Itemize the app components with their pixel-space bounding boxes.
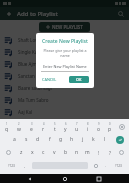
staticText: 4 (43, 122, 45, 126)
button[interactable]: ! (93, 146, 104, 159)
staticText: Ma Tum Sabro (18, 97, 49, 103)
button[interactable]: f (44, 133, 55, 146)
button[interactable]: m (82, 146, 93, 159)
staticText: t (54, 126, 56, 133)
button[interactable]: j (77, 133, 88, 146)
staticText: 8 (87, 122, 89, 126)
staticText: g (59, 136, 63, 143)
button[interactable]: Enter New Playlist Name (41, 62, 89, 71)
button[interactable]: Blue Ajmer Tra (0, 58, 129, 70)
button[interactable]: Enter (112, 133, 128, 146)
button[interactable]: Sanctan (0, 70, 129, 82)
button[interactable]: x (27, 146, 38, 159)
button[interactable]: NEW PLAYLIST (39, 22, 90, 32)
staticText: OK (76, 77, 82, 82)
staticText: r (42, 126, 45, 133)
staticText: . (105, 163, 107, 168)
button[interactable]: Back (25, 174, 35, 183)
button[interactable]: 7 (71, 121, 82, 133)
staticText: Blue Ajmer Tra (18, 61, 49, 67)
button[interactable]: Add (4, 9, 13, 18)
staticText: 7 (76, 122, 78, 126)
staticText: j (82, 136, 84, 143)
button[interactable]: Aaj Kal (0, 106, 129, 118)
staticText: y (64, 126, 67, 133)
staticText: ?123 (115, 164, 122, 168)
staticText: p (108, 126, 112, 133)
staticText: n (75, 149, 79, 156)
staticText: 2 (18, 122, 20, 126)
staticText: Baare saturnagi (18, 85, 52, 91)
staticText: NEW PLAYLIST (52, 24, 83, 30)
button[interactable]: Single Kaur (0, 46, 129, 58)
staticText: 0 (109, 122, 111, 126)
staticText: m (85, 149, 90, 156)
button[interactable]: 5 (49, 121, 60, 133)
button[interactable]: 2 (13, 121, 25, 133)
button[interactable]: ?123 (110, 159, 127, 172)
staticText: Add to Playlist (17, 10, 58, 18)
button[interactable]: Shift (1, 146, 15, 159)
staticText: Enter New Playlist Name (43, 64, 87, 69)
staticText: o (97, 126, 101, 133)
button[interactable]: k (88, 133, 99, 146)
staticText: 3 (31, 122, 33, 126)
button[interactable]: Backspace (115, 121, 128, 133)
button[interactable]: CANCEL (41, 76, 58, 83)
staticText: b (64, 149, 68, 156)
button[interactable]: 9 (93, 121, 104, 133)
button[interactable]: n (71, 146, 82, 159)
button[interactable]: 3 (25, 121, 37, 133)
staticText: ?123 (8, 164, 15, 168)
staticText: i (87, 126, 89, 133)
button[interactable]: d (32, 133, 44, 146)
staticText: 5 (54, 122, 56, 126)
button[interactable]: g (55, 133, 66, 146)
button[interactable]: 1 (1, 121, 13, 133)
button[interactable]: z (15, 146, 27, 159)
staticText: l (104, 136, 106, 143)
button[interactable]: 4 (37, 121, 49, 133)
staticText: ! (98, 150, 100, 156)
button[interactable]: Recents (94, 174, 104, 183)
button[interactable]: , (20, 159, 30, 172)
staticText: CANCEL (42, 77, 57, 82)
button[interactable]: s (20, 133, 32, 146)
button[interactable]: ?123 (2, 159, 20, 172)
button[interactable]: v (49, 146, 60, 159)
button[interactable]: ? (104, 146, 115, 159)
button[interactable]: 6 (60, 121, 71, 133)
button[interactable]: Home (60, 174, 70, 183)
staticText: 1 (6, 122, 8, 126)
staticText: v (53, 149, 56, 156)
staticText: k (92, 136, 95, 143)
staticText: Shaft Love (18, 37, 40, 43)
staticText: Sanctan (18, 73, 35, 79)
button[interactable]: Shift (115, 146, 128, 159)
staticText: w (17, 126, 21, 133)
button[interactable]: OK (69, 76, 89, 83)
button[interactable]: h (66, 133, 77, 146)
staticText: q (5, 126, 9, 133)
button[interactable]: Emoji (90, 159, 101, 172)
staticText: Create New Playlist (41, 38, 89, 45)
staticText: f (49, 136, 51, 143)
button[interactable]: 0 (104, 121, 115, 133)
button[interactable]: b (60, 146, 71, 159)
button[interactable]: Search (116, 9, 125, 18)
button[interactable]: a (8, 133, 20, 146)
staticText: 6 (65, 122, 67, 126)
button[interactable]: Ma Tum Sabro (0, 94, 129, 106)
staticText: , (24, 163, 26, 168)
button[interactable]: Shaft Love (0, 34, 129, 46)
button[interactable]: c (38, 146, 49, 159)
staticText: h (70, 136, 74, 143)
staticText: Please give your playlist a name (41, 48, 89, 58)
button[interactable]: 8 (82, 121, 93, 133)
button[interactable]: Baare saturnagi (0, 82, 129, 94)
staticText: a (13, 136, 16, 143)
staticText: ? (109, 150, 111, 156)
button[interactable]: l (99, 133, 110, 146)
